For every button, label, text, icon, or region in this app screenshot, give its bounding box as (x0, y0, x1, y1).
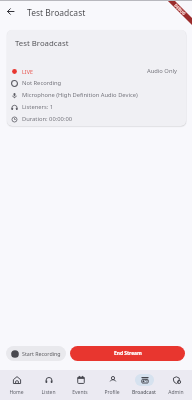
staticText: Test Broadcast (15, 38, 69, 49)
staticText: End Stream (114, 350, 142, 357)
button[interactable]: Listen (32, 370, 64, 400)
button[interactable]: Home (0, 370, 32, 400)
button[interactable]: Start Recording (6, 346, 66, 361)
button[interactable]: Broadcast (128, 370, 160, 400)
staticText: Events (72, 389, 88, 396)
button[interactable]: Profile (96, 370, 128, 400)
staticText: Home (9, 389, 24, 396)
staticText: Not Recording (22, 79, 62, 87)
staticText: DEBUG (173, 3, 187, 16)
staticText: Audio Only (147, 67, 177, 75)
staticText: Listen (41, 389, 56, 396)
button[interactable]: End Stream (70, 346, 185, 361)
staticText: Profile (104, 389, 120, 396)
staticText: Duration: 00:00:00 (22, 115, 73, 123)
button[interactable]: Admin (160, 370, 192, 400)
button[interactable]: Events (64, 370, 96, 400)
button[interactable]: Back (3, 4, 18, 19)
staticText: Broadcast (132, 389, 156, 396)
staticText: Microphone (High Definition Audio Device… (22, 91, 138, 99)
staticText: Listeners: 1 (22, 103, 54, 111)
staticText: Start Recording (22, 350, 61, 357)
staticText: Test Broadcast (27, 7, 86, 19)
staticText: Admin (168, 389, 184, 396)
staticText: LIVE (22, 68, 33, 75)
